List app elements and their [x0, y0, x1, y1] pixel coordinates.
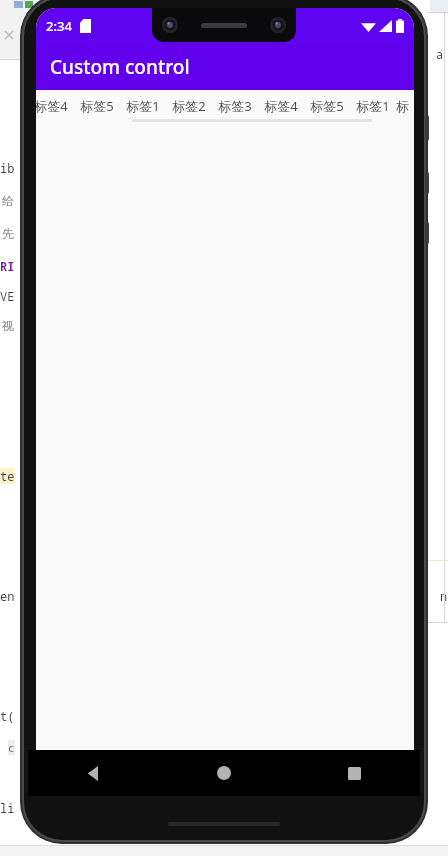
- staticText: n: [440, 588, 448, 604]
- button[interactable]: 标签2: [166, 90, 212, 122]
- staticText: 标签4: [264, 97, 298, 115]
- staticText: te: [0, 468, 15, 484]
- staticText: 标签4: [36, 97, 68, 115]
- staticText: li: [0, 800, 15, 816]
- staticText: 标签3: [218, 97, 252, 115]
- button[interactable]: 标: [396, 90, 406, 122]
- staticText: VE: [0, 288, 15, 304]
- button[interactable]: 标签4: [36, 90, 74, 122]
- staticText: ib: [0, 160, 15, 176]
- staticText: Custom control: [50, 54, 190, 80]
- staticText: 2:34: [46, 17, 72, 35]
- staticText: 标签5: [80, 97, 114, 115]
- staticText: 标签2: [172, 97, 206, 115]
- button[interactable]: 标签4: [258, 90, 304, 122]
- button[interactable]: 标签3: [212, 90, 258, 122]
- staticText: a: [436, 46, 444, 62]
- staticText: 给: [2, 193, 14, 208]
- button[interactable]: 标签1: [350, 90, 396, 122]
- staticText: 标签1: [356, 97, 390, 115]
- staticText: 先: [2, 226, 14, 241]
- staticText: 标签5: [310, 97, 344, 115]
- button[interactable]: 标签5: [304, 90, 350, 122]
- button[interactable]: 标签5: [74, 90, 120, 122]
- staticText: 标签1: [126, 97, 160, 115]
- button[interactable]: Recent apps: [289, 750, 420, 796]
- staticText: c: [8, 740, 15, 755]
- button[interactable]: Custom control: [36, 44, 414, 90]
- staticText: 视: [2, 318, 14, 333]
- staticText: 标: [396, 98, 406, 114]
- staticText: en: [0, 588, 15, 604]
- button[interactable]: Back: [28, 750, 158, 796]
- button[interactable]: 标签1: [120, 90, 166, 122]
- staticText: RI: [0, 258, 15, 274]
- button[interactable]: Home: [158, 750, 289, 796]
- staticText: t(: [0, 708, 15, 724]
